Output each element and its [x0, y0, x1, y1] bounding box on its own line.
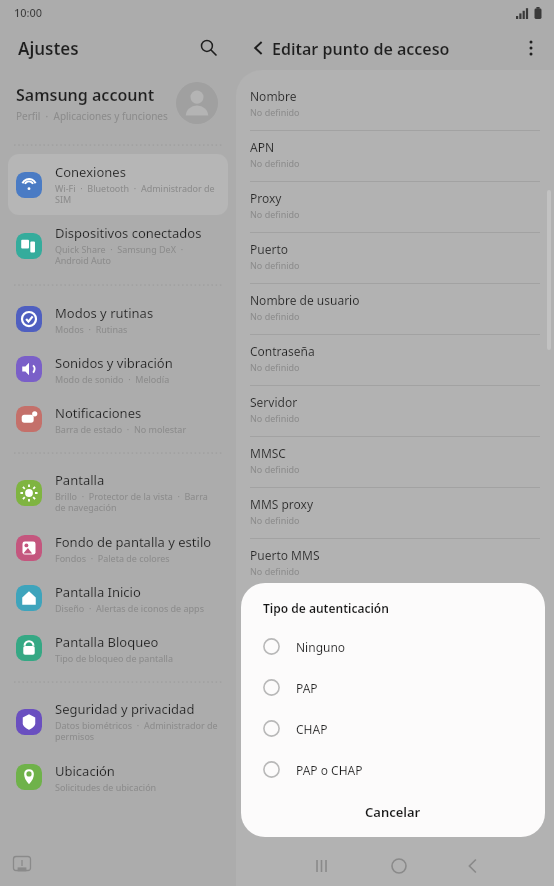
staticText: Tipo de autenticación: [263, 600, 389, 616]
staticText: Fondos · Paleta de colores: [55, 552, 170, 564]
button[interactable]: APN: [236, 131, 554, 182]
button[interactable]: Atrás: [464, 857, 482, 875]
staticText: CHAP: [296, 721, 328, 737]
staticText: No definido: [250, 310, 300, 322]
staticText: Tipo de bloqueo de pantalla: [55, 652, 173, 664]
button[interactable]: Puerto: [236, 233, 554, 284]
staticText: Diseño · Alertas de iconos de apps: [55, 602, 204, 614]
staticText: Modo de sonido · Melodía: [55, 373, 170, 385]
staticText: Cancelar: [365, 803, 421, 821]
button[interactable]: Sonidos y vibración: [8, 344, 228, 394]
staticText: Ajustes: [18, 37, 79, 60]
staticText: Wi-Fi · Bluetooth · Administrador de SIM: [55, 182, 218, 206]
button[interactable]: Puerto MMS: [236, 539, 554, 590]
button[interactable]: MMS proxy: [236, 488, 554, 539]
staticText: Contraseña: [250, 343, 315, 359]
staticText: No definido: [250, 106, 300, 118]
button[interactable]: Notificaciones: [8, 394, 228, 444]
staticText: Modos y rutinas: [55, 304, 154, 322]
staticText: Solicitudes de ubicación: [55, 781, 157, 793]
staticText: Perfil · Aplicaciones y funciones: [16, 109, 168, 123]
staticText: No definido: [250, 565, 300, 577]
button[interactable]: Atrás: [242, 31, 276, 65]
button[interactable]: Servidor: [236, 386, 554, 437]
staticText: Pantalla: [55, 471, 105, 489]
staticText: Proxy: [250, 190, 282, 206]
staticText: Conexiones: [55, 163, 126, 181]
staticText: No definido: [250, 514, 300, 526]
staticText: Quick Share · Samsung DeX · Android Auto: [55, 243, 218, 267]
button[interactable]: Pantalla Inicio: [8, 573, 228, 623]
staticText: Ubicación: [55, 762, 115, 780]
button[interactable]: Pantalla Bloqueo: [8, 623, 228, 673]
button[interactable]: CHAP: [241, 708, 545, 749]
button[interactable]: Nombre: [236, 80, 554, 131]
staticText: MMSC: [250, 445, 286, 461]
staticText: Dispositivos conectados: [55, 224, 202, 242]
staticText: Editar punto de acceso: [272, 38, 450, 60]
button[interactable]: Ubicación: [8, 752, 228, 802]
button[interactable]: PAP: [241, 667, 545, 708]
button[interactable]: Conexiones: [8, 154, 228, 215]
staticText: PAP: [296, 680, 318, 696]
staticText: No definido: [250, 412, 300, 424]
staticText: Notificaciones: [55, 404, 142, 422]
staticText: Nombre: [250, 88, 297, 104]
button[interactable]: Fondo de pantalla y estilo: [8, 523, 228, 573]
staticText: Ninguno: [296, 639, 346, 655]
button[interactable]: PAP o CHAP: [241, 749, 545, 790]
staticText: Sonidos y vibración: [55, 354, 173, 372]
button[interactable]: Seguridad y privacidad: [8, 691, 228, 752]
staticText: No definido: [250, 259, 300, 271]
button[interactable]: Captura de pantalla: [12, 855, 32, 875]
button[interactable]: Pantalla: [8, 462, 228, 523]
button[interactable]: Dispositivos conectados: [8, 215, 228, 276]
staticText: Pantalla Bloqueo: [55, 633, 159, 651]
staticText: Servidor: [250, 394, 298, 410]
button[interactable]: MMSC: [236, 437, 554, 488]
staticText: 10:00: [14, 5, 43, 20]
staticText: Brillo · Protector de la vista · Barra d…: [55, 490, 218, 514]
button[interactable]: Recientes: [313, 857, 331, 875]
button[interactable]: Samsung account: [0, 70, 236, 136]
button[interactable]: Más opciones: [514, 31, 548, 65]
staticText: Nombre de usuario: [250, 292, 360, 308]
staticText: Modos · Rutinas: [55, 323, 128, 335]
button[interactable]: Ninguno: [241, 626, 545, 667]
staticText: Puerto MMS: [250, 547, 320, 563]
button[interactable]: Modos y rutinas: [8, 294, 228, 344]
staticText: Pantalla Inicio: [55, 583, 141, 601]
staticText: Puerto: [250, 241, 288, 257]
staticText: PAP o CHAP: [296, 762, 363, 778]
staticText: APN: [250, 139, 275, 155]
button[interactable]: Contraseña: [236, 335, 554, 386]
staticText: No definido: [250, 157, 300, 169]
staticText: Seguridad y privacidad: [55, 700, 195, 718]
staticText: No definido: [250, 208, 300, 220]
staticText: Barra de estado · No molestar: [55, 423, 187, 435]
button[interactable]: Cancelar: [241, 790, 545, 834]
staticText: No definido: [250, 463, 300, 475]
staticText: Datos biométricos · Administrador de per…: [55, 719, 218, 743]
staticText: Samsung account: [16, 84, 155, 106]
button[interactable]: Proxy: [236, 182, 554, 233]
button[interactable]: Nombre de usuario: [236, 284, 554, 335]
staticText: MMS proxy: [250, 496, 314, 512]
staticText: Fondo de pantalla y estilo: [55, 533, 212, 551]
button[interactable]: Buscar: [192, 31, 226, 65]
staticText: No definido: [250, 361, 300, 373]
button[interactable]: Inicio: [390, 857, 408, 875]
